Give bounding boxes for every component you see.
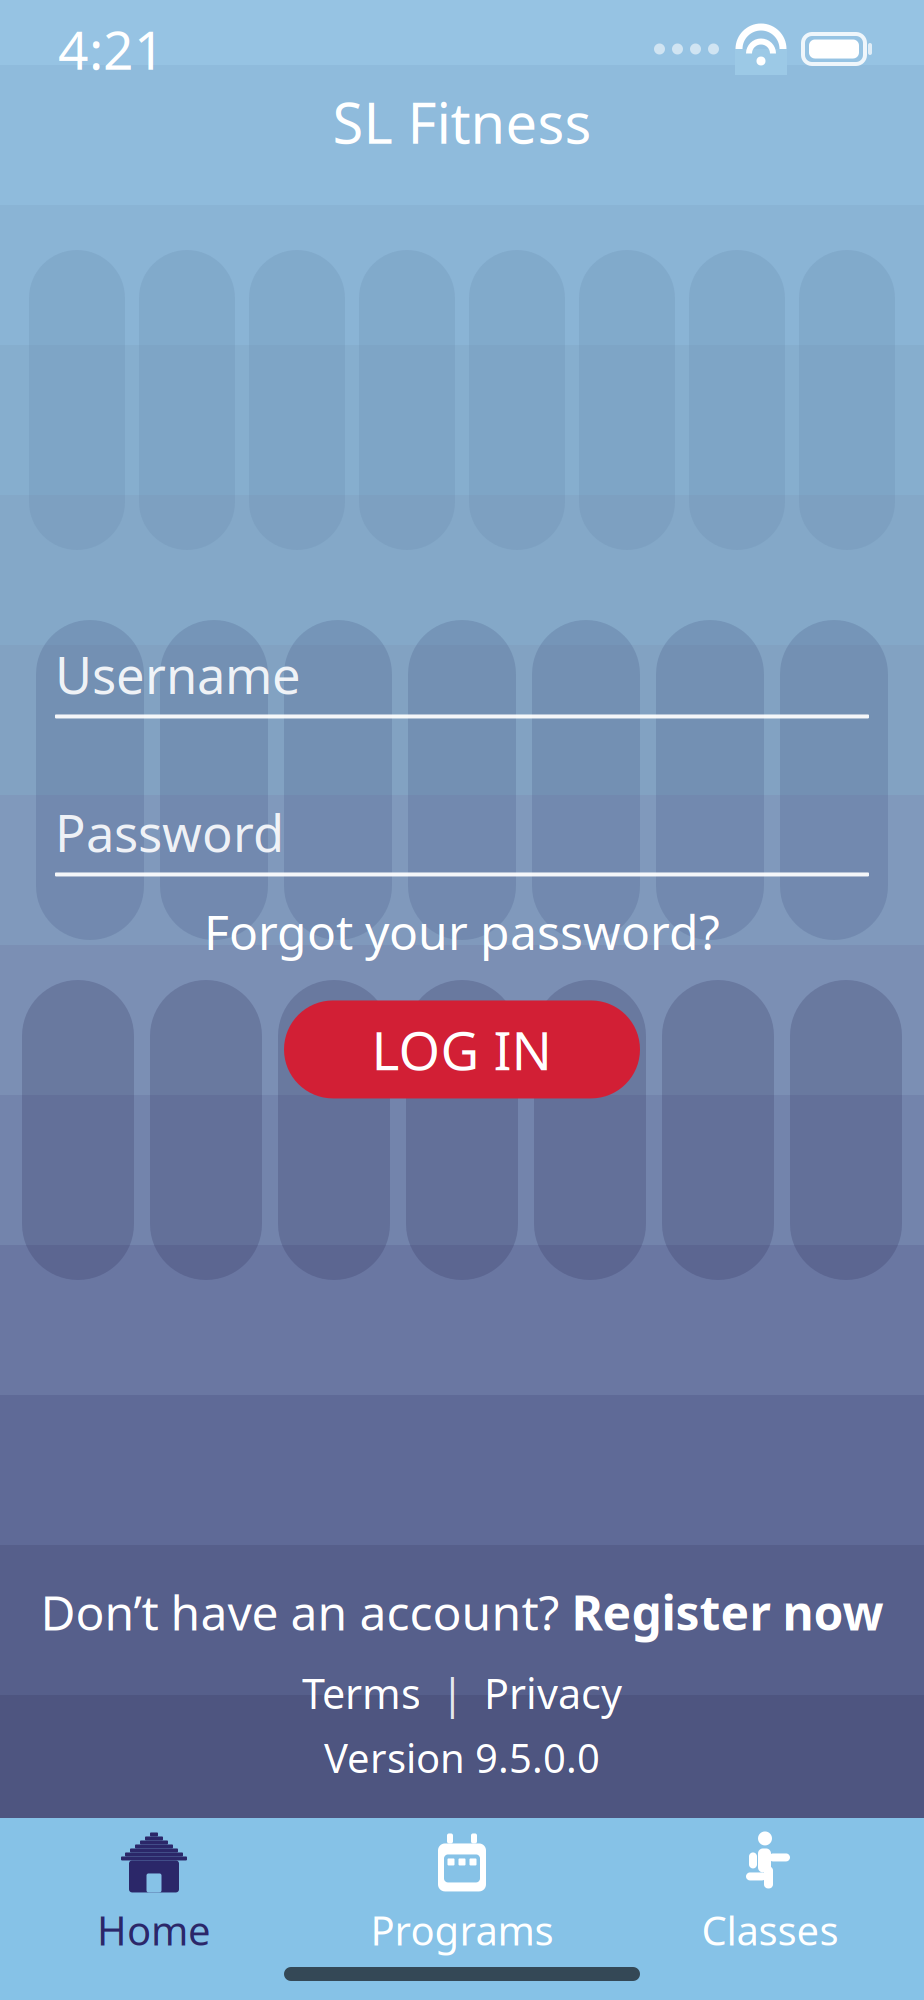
staticText: Terms xyxy=(302,1665,421,1720)
staticText: LOG IN xyxy=(371,1014,552,1085)
staticText: Register now xyxy=(571,1580,883,1644)
staticText: Programs xyxy=(370,1903,553,1956)
button[interactable]: Privacy xyxy=(478,1665,628,1720)
staticText: | xyxy=(441,1665,464,1720)
button[interactable]: Forgot your password? xyxy=(0,876,924,986)
button[interactable]: Classes xyxy=(616,1829,924,1959)
staticText: 4:21 xyxy=(58,14,165,84)
button[interactable]: Programs xyxy=(308,1829,616,1959)
staticText: Home xyxy=(97,1903,211,1956)
staticText: SL Fitness xyxy=(332,85,591,159)
staticText: Privacy xyxy=(484,1665,622,1720)
button[interactable]: Terms xyxy=(296,1665,427,1720)
button[interactable]: Don’t have an account? xyxy=(0,1577,924,1647)
staticText: Username xyxy=(55,641,301,708)
staticText: Password xyxy=(55,799,284,866)
staticText: Forgot your password? xyxy=(204,900,720,963)
button[interactable]: Password xyxy=(55,806,869,876)
staticText: Classes xyxy=(701,1903,838,1956)
button[interactable]: LOG IN xyxy=(284,1000,640,1098)
staticText: Don’t have an account? xyxy=(40,1580,571,1644)
button[interactable]: Home xyxy=(0,1829,308,1959)
staticText: Version 9.5.0.0 xyxy=(324,1731,600,1784)
button[interactable]: Username xyxy=(55,648,869,718)
